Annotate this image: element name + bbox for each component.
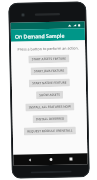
button[interactable]: REQUEST MODULE UNINSTALL	[24, 126, 76, 135]
button[interactable]: Back	[25, 155, 35, 164]
button[interactable]: START JAVA FEATURE	[30, 67, 68, 75]
staticText: START JAVA FEATURE	[34, 69, 65, 73]
button[interactable]: Home	[46, 155, 56, 164]
button[interactable]: Recent apps	[66, 154, 76, 164]
button[interactable]: INSTALL DEFERRED	[32, 115, 68, 123]
staticText: START NATIVE FEATURE	[32, 81, 67, 85]
button[interactable]: START ASSETS FEATURE	[28, 55, 69, 63]
button[interactable]: START NATIVE FEATURE	[29, 79, 70, 87]
staticText: INSTALL ALL FEATURES NOW	[28, 104, 71, 109]
button[interactable]: SHOW ASSETS	[36, 91, 63, 99]
button[interactable]: INSTALL ALL FEATURES NOW	[25, 102, 74, 111]
staticText: On Demand Sample	[15, 32, 65, 40]
staticText: START ASSETS FEATURE	[31, 57, 66, 61]
staticText: INSTALL DEFERRED	[36, 117, 65, 121]
staticText: Press a button to perform an action.	[17, 45, 79, 52]
staticText: SHOW ASSETS	[39, 93, 60, 97]
staticText: REQUEST MODULE UNINSTALL	[27, 128, 73, 133]
